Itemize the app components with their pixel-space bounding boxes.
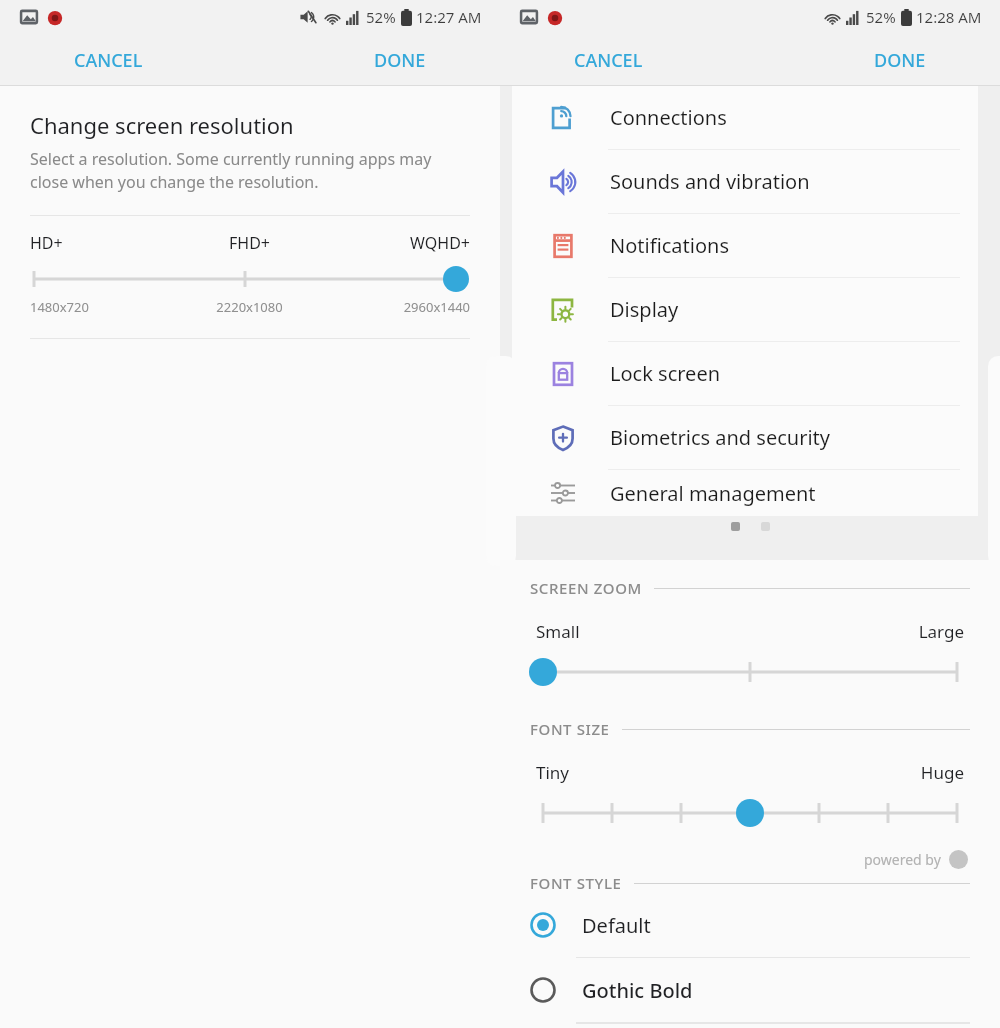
- staticText: Default: [582, 912, 651, 939]
- staticText: DONE: [374, 48, 426, 73]
- button[interactable]: Connections: [512, 86, 978, 150]
- staticText: Change screen resolution: [30, 110, 294, 140]
- staticText: Display: [610, 296, 679, 323]
- staticText: 1480x720: [30, 298, 176, 316]
- button[interactable]: DONE: [860, 42, 940, 79]
- staticText: powered by: [864, 850, 941, 869]
- button[interactable]: Lock screen: [512, 342, 978, 406]
- staticText: Sounds and vibration: [610, 168, 810, 195]
- staticText: Small: [536, 620, 750, 643]
- staticText: Gothic Bold: [582, 977, 693, 1004]
- button[interactable]: CANCEL: [60, 42, 157, 79]
- staticText: Huge: [750, 761, 964, 784]
- staticText: WQHD+: [323, 232, 470, 254]
- button[interactable]: Slider: [530, 657, 970, 687]
- button[interactable]: Sounds and vibration: [512, 150, 978, 214]
- staticText: Notifications: [610, 232, 729, 259]
- staticText: 52%: [366, 7, 396, 27]
- button[interactable]: CANCEL: [560, 42, 657, 79]
- staticText: Biometrics and security: [610, 424, 830, 451]
- staticText: Select a resolution. Some currently runn…: [30, 148, 470, 193]
- staticText: Large: [750, 620, 964, 643]
- staticText: Connections: [610, 104, 727, 131]
- button[interactable]: Biometrics and security: [512, 406, 978, 470]
- staticText: 2960x1440: [323, 298, 470, 316]
- staticText: CANCEL: [74, 48, 143, 73]
- staticText: HD+: [30, 232, 176, 254]
- staticText: Lock screen: [610, 360, 721, 387]
- button[interactable]: General management: [512, 470, 978, 516]
- button[interactable]: DONE: [360, 42, 440, 79]
- staticText: CANCEL: [574, 48, 643, 73]
- button[interactable]: [30, 266, 470, 292]
- staticText: FHD+: [176, 232, 323, 254]
- button[interactable]: Default: [530, 893, 970, 958]
- staticText: DONE: [874, 48, 926, 73]
- staticText: FONT STYLE: [530, 873, 622, 893]
- staticText: 52%: [866, 7, 896, 27]
- staticText: 12:27 AM: [416, 7, 482, 27]
- button[interactable]: Display: [512, 278, 978, 342]
- button[interactable]: Slider: [530, 798, 970, 828]
- staticText: FONT SIZE: [530, 719, 610, 739]
- staticText: 2220x1080: [176, 298, 323, 316]
- button[interactable]: Gothic Bold: [530, 958, 970, 1023]
- other: Monotype logo: [949, 850, 968, 869]
- button[interactable]: Notifications: [512, 214, 978, 278]
- staticText: General management: [610, 480, 816, 507]
- staticText: SCREEN ZOOM: [530, 578, 642, 598]
- staticText: Tiny: [536, 761, 750, 784]
- staticText: 12:28 AM: [916, 7, 982, 27]
